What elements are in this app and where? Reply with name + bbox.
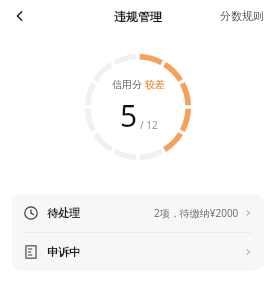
staticText: 分数规则 [220, 9, 264, 23]
staticText: 待处理 [47, 206, 80, 220]
staticText: 信用分 [112, 78, 142, 91]
staticText: 违规管理 [114, 9, 162, 24]
staticText: 较差 [145, 78, 165, 91]
staticText: 5 [120, 95, 138, 136]
button[interactable]: Back [4, 0, 36, 32]
button[interactable]: 待处理 [12, 194, 264, 232]
staticText: 2项，待缴纳¥2000 [154, 206, 239, 220]
button[interactable]: 分数规则 [208, 3, 276, 29]
staticText: 申诉中 [47, 245, 80, 259]
staticText: / 12 [140, 118, 158, 132]
button[interactable]: 申诉中 [12, 233, 264, 271]
